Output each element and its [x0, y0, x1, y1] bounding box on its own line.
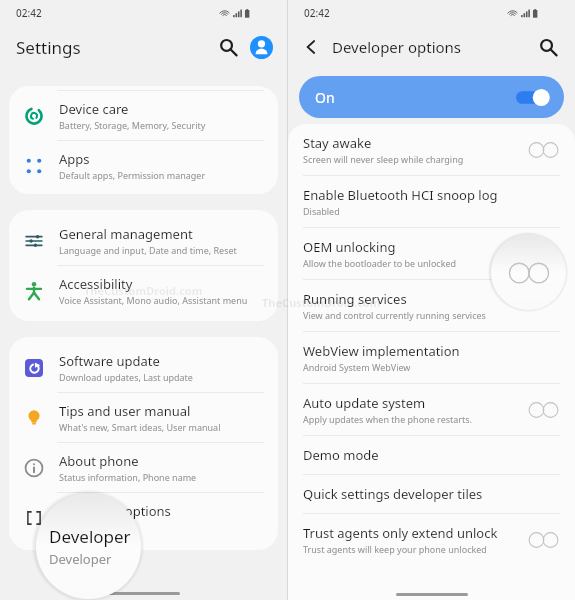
staticText: About phone	[59, 452, 139, 470]
button[interactable]: Auto update system	[288, 383, 575, 435]
staticText: Trust agents will keep your phone unlock…	[303, 543, 487, 555]
staticText: Default apps, Permission manager	[59, 169, 206, 181]
staticText: Auto update system	[303, 394, 426, 412]
button[interactable]: Device care	[9, 90, 278, 140]
staticText: Developer options	[59, 521, 137, 533]
staticText: Battery, Storage, Memory, Security	[59, 119, 206, 131]
staticText: Apps	[59, 150, 90, 168]
button[interactable]: Quick settings developer tiles	[288, 474, 575, 513]
staticText: Status information, Phone name	[59, 471, 197, 483]
staticText: Trust agents only extend unlock	[303, 524, 498, 542]
button[interactable]: Trust agents only extend unlock	[288, 513, 575, 565]
staticText: 02:42	[304, 6, 330, 20]
staticText: Stay awake	[303, 134, 372, 152]
staticText: On	[315, 88, 335, 107]
staticText: Quick settings developer tiles	[303, 485, 483, 503]
staticText: General management	[59, 225, 193, 243]
staticText: What's new, Smart ideas, User manual	[59, 421, 221, 433]
button[interactable]: General management	[9, 216, 278, 265]
staticText: Voice Assistant, Mono audio, Assistant m…	[59, 294, 248, 306]
staticText: Software update	[59, 352, 160, 370]
staticText: Screen will never sleep while charging	[303, 153, 464, 165]
button[interactable]: About phone	[9, 442, 278, 492]
staticText: Developer options	[332, 37, 462, 57]
staticText: Apply updates when the phone restarts.	[303, 413, 473, 425]
button[interactable]: Search	[535, 34, 561, 60]
button[interactable]: Enable Bluetooth HCI snoop log	[288, 175, 575, 227]
staticText: Allow the bootloader to be unlocked	[303, 257, 457, 269]
button[interactable]: On	[299, 76, 564, 118]
staticText: Language and input, Date and time, Reset	[59, 244, 237, 256]
button[interactable]: Stay awake	[288, 124, 575, 175]
staticText: Developer options	[49, 550, 141, 568]
button[interactable]: OEM unlocking	[288, 227, 575, 279]
staticText: TheCustomDroid.com	[84, 283, 203, 298]
staticText: Developer options	[49, 525, 141, 548]
staticText: WebView implementation	[303, 342, 460, 360]
button[interactable]: Developer options	[9, 492, 278, 542]
staticText: TheCustomDroid.com	[262, 295, 381, 310]
staticText: Enable Bluetooth HCI snoop log	[303, 186, 498, 204]
staticText: Developer options	[59, 502, 171, 520]
staticText: OEM unlocking	[303, 238, 396, 256]
button[interactable]: Accessibility	[9, 265, 278, 315]
button[interactable]: Tips and user manual	[9, 392, 278, 442]
staticText: Settings	[16, 36, 81, 59]
button[interactable]: Search	[215, 34, 241, 60]
button[interactable]: Software update	[9, 343, 278, 392]
staticText: Device care	[59, 100, 129, 118]
button[interactable]: Running services	[288, 279, 575, 331]
staticText: 02:42	[16, 6, 42, 20]
button[interactable]: Back	[298, 34, 324, 60]
staticText: Demo mode	[303, 446, 379, 464]
button[interactable]: WebView implementation	[288, 331, 575, 383]
staticText: Tips and user manual	[59, 402, 191, 420]
staticText: Download updates, Last update	[59, 371, 193, 383]
button[interactable]: Apps	[9, 140, 278, 190]
staticText: Android System WebView	[303, 361, 411, 373]
staticText: Running services	[303, 290, 407, 308]
button[interactable]: Account	[250, 36, 273, 59]
button[interactable]: Demo mode	[288, 435, 575, 474]
staticText: Accessibility	[59, 275, 133, 293]
staticText: View and control currently running servi…	[303, 309, 486, 321]
staticText: Disabled	[303, 205, 340, 217]
